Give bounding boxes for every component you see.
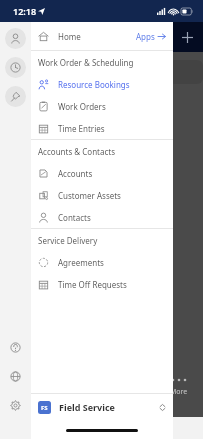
staticText: Customer Assets xyxy=(58,190,121,201)
button[interactable]: Agreements xyxy=(31,251,173,273)
staticText: 12:18 xyxy=(13,5,37,17)
button[interactable]: Accounts xyxy=(31,162,173,184)
button[interactable]: Recent xyxy=(5,57,26,78)
button[interactable]: Time Entries xyxy=(31,117,173,139)
staticText: Field Service xyxy=(59,401,115,413)
staticText: Contacts xyxy=(58,212,91,223)
button[interactable]: Pinned xyxy=(5,86,26,107)
button[interactable]: Apps xyxy=(136,31,166,42)
staticText: Time Off Requests xyxy=(58,279,127,290)
staticText: Service Delivery xyxy=(38,235,98,246)
button[interactable]: Customer Assets xyxy=(31,184,173,206)
button[interactable]: More xyxy=(170,376,188,397)
button[interactable]: Contacts xyxy=(31,206,173,228)
staticText: Agreements xyxy=(58,257,104,268)
button[interactable]: Resource Bookings xyxy=(31,73,173,95)
staticText: More xyxy=(170,387,188,397)
staticText: Resource Bookings xyxy=(58,79,130,90)
button[interactable]: Home xyxy=(31,26,173,47)
button[interactable]: Account xyxy=(5,28,26,49)
staticText: Home xyxy=(58,31,81,42)
button[interactable]: Language xyxy=(6,367,25,386)
staticText: Work Orders xyxy=(58,101,106,112)
staticText: FS xyxy=(41,404,48,412)
button[interactable]: Add xyxy=(176,26,198,48)
staticText: Accounts xyxy=(58,168,93,179)
button[interactable]: Settings xyxy=(6,396,25,415)
button[interactable]: Time Off Requests xyxy=(31,273,173,295)
staticText: Apps xyxy=(136,31,155,42)
button[interactable]: FS xyxy=(31,394,173,420)
button[interactable]: Help xyxy=(6,338,25,357)
button[interactable]: Work Orders xyxy=(31,95,173,117)
staticText: Time Entries xyxy=(58,123,105,134)
staticText: Accounts & Contacts xyxy=(38,146,116,157)
staticText: Work Order & Scheduling xyxy=(38,57,134,68)
